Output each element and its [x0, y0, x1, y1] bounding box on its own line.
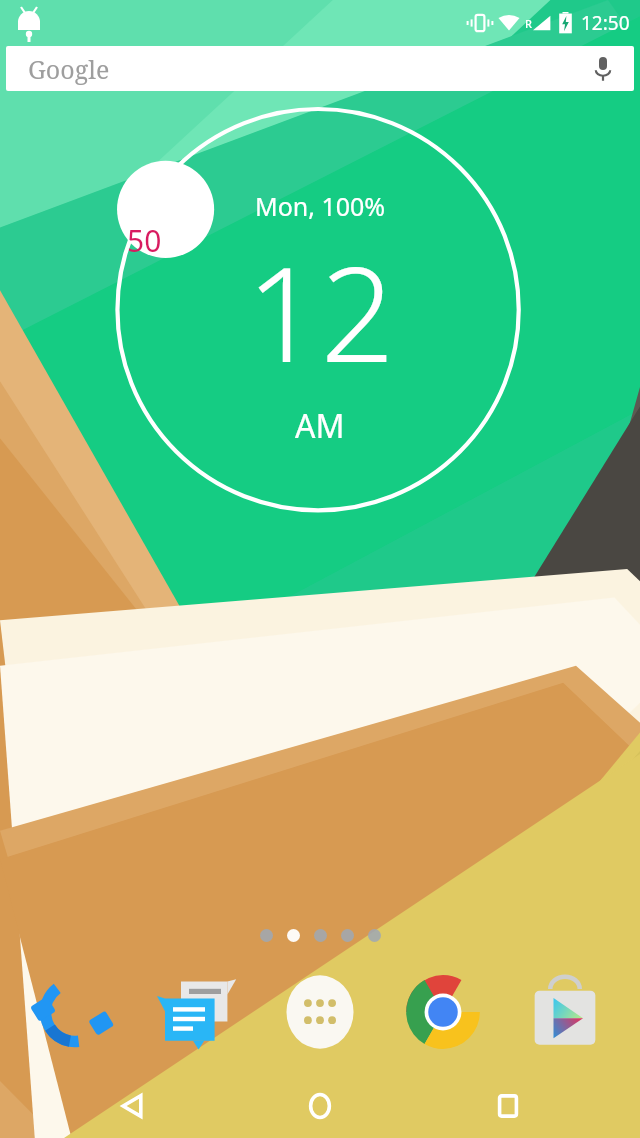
button[interactable]: Messages — [149, 964, 245, 1060]
staticText: Mon, 100% — [255, 189, 386, 223]
staticText: AM — [295, 404, 345, 448]
staticText: R — [525, 16, 532, 31]
staticText: 12 — [246, 223, 395, 400]
button[interactable]: Play Store — [517, 964, 613, 1060]
button[interactable]: Voice search — [586, 52, 620, 86]
button[interactable]: Chrome — [395, 964, 491, 1060]
button[interactable]: Phone — [27, 964, 123, 1060]
staticText: 12:50 — [581, 10, 630, 36]
button[interactable]: Mon, 100% — [0, 109, 640, 521]
button[interactable]: Google — [6, 46, 634, 91]
button[interactable]: Apps — [272, 964, 368, 1060]
staticText: 50 — [127, 220, 162, 261]
button[interactable]: Home — [265, 1074, 375, 1138]
staticText: Google — [28, 52, 110, 86]
button[interactable]: Recents — [453, 1074, 563, 1138]
button[interactable]: Back — [78, 1074, 188, 1138]
